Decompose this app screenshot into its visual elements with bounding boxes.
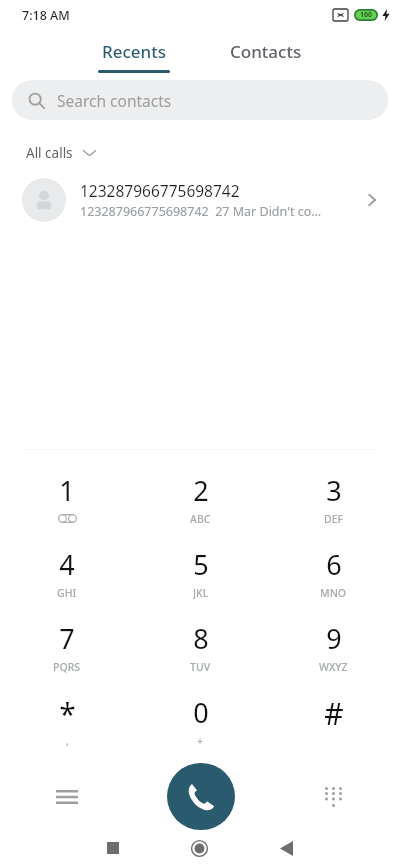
- staticText: 123287966775698742 27 Mar Didn't co…: [80, 203, 322, 220]
- button[interactable]: Menu: [0, 763, 134, 830]
- button[interactable]: 7: [0, 609, 134, 683]
- staticText: 7: [59, 620, 75, 657]
- button[interactable]: 4: [0, 535, 134, 609]
- staticText: DEF: [324, 512, 344, 525]
- staticText: All calls: [26, 144, 73, 162]
- staticText: 4: [59, 546, 75, 583]
- staticText: Contacts: [230, 40, 302, 63]
- staticText: *: [59, 693, 76, 734]
- staticText: WXYZ: [319, 660, 348, 673]
- button[interactable]: 3: [267, 461, 400, 535]
- staticText: 3: [326, 472, 342, 509]
- staticText: ABC: [190, 512, 211, 525]
- staticText: +: [197, 734, 204, 747]
- staticText: 123287966775698742: [80, 180, 240, 201]
- button[interactable]: Call: [167, 763, 235, 830]
- button[interactable]: *: [0, 683, 134, 757]
- button[interactable]: #: [267, 683, 400, 757]
- button[interactable]: 5: [134, 535, 267, 609]
- button[interactable]: 123287966775698742: [0, 168, 400, 232]
- button[interactable]: 0: [134, 683, 267, 757]
- button[interactable]: 8: [134, 609, 267, 683]
- button[interactable]: Contacts: [216, 30, 316, 76]
- staticText: 9: [326, 620, 342, 657]
- button[interactable]: Recents: [84, 30, 184, 76]
- button[interactable]: 6: [267, 535, 400, 609]
- staticText: GHI: [57, 586, 77, 599]
- staticText: 8: [193, 620, 209, 657]
- button[interactable]: All calls: [14, 138, 108, 168]
- button[interactable]: 9: [267, 609, 400, 683]
- staticText: 2: [193, 472, 209, 509]
- button[interactable]: 1: [0, 461, 134, 535]
- staticText: JKL: [193, 586, 209, 599]
- button[interactable]: Home: [156, 830, 243, 866]
- button[interactable]: 2: [134, 461, 267, 535]
- staticText: 6: [326, 546, 342, 583]
- staticText: PQRS: [53, 660, 81, 673]
- staticText: 1: [59, 472, 75, 509]
- staticText: Recents: [102, 40, 167, 63]
- staticText: 7:18 AM: [22, 7, 70, 24]
- staticText: #: [324, 693, 344, 734]
- staticText: MNO: [320, 586, 347, 599]
- button[interactable]: Dialpad: [267, 763, 400, 830]
- staticText: Search contacts: [57, 90, 172, 111]
- button[interactable]: Recent apps: [69, 830, 156, 866]
- staticText: 100: [360, 10, 373, 20]
- staticText: 0: [193, 694, 209, 731]
- button[interactable]: Call details: [354, 182, 390, 218]
- button[interactable]: Back: [243, 830, 330, 866]
- staticText: ,: [66, 734, 69, 747]
- staticText: TUV: [190, 660, 211, 673]
- staticText: 5: [193, 546, 209, 583]
- button[interactable]: Search contacts: [12, 80, 388, 120]
